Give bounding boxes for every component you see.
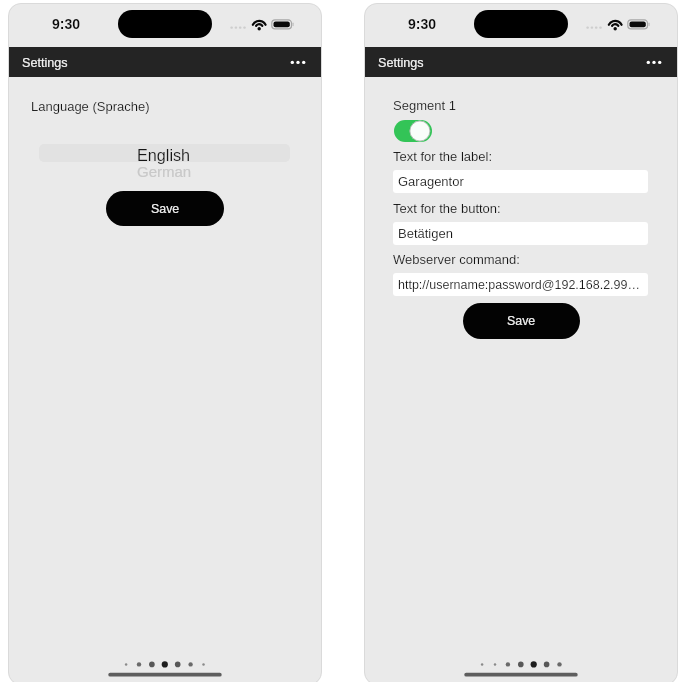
staticText: Text for the button: bbox=[393, 201, 501, 216]
staticText: Segment 1 bbox=[393, 98, 456, 113]
staticText: 9:30 bbox=[408, 16, 437, 32]
staticText: http://username:password@192.168.2.99:80… bbox=[398, 278, 643, 292]
button[interactable]: http://username:password@192.168.2.99:80… bbox=[393, 273, 648, 296]
staticText: 9:30 bbox=[52, 16, 81, 32]
staticText: Webserver command: bbox=[393, 252, 520, 267]
button[interactable] bbox=[39, 144, 290, 162]
staticText: Save bbox=[507, 314, 536, 328]
button[interactable]: Garagentor bbox=[393, 170, 648, 193]
staticText: German bbox=[137, 163, 192, 180]
staticText: Settings bbox=[22, 56, 68, 70]
staticText: English bbox=[137, 146, 191, 164]
staticText: Betätigen bbox=[398, 226, 453, 241]
button[interactable]: Betätigen bbox=[393, 222, 648, 245]
button[interactable]: Save bbox=[463, 303, 580, 339]
staticText: Garagentor bbox=[398, 174, 464, 189]
staticText: Language (Sprache) bbox=[31, 99, 150, 114]
button[interactable]: More options bbox=[639, 47, 669, 77]
button[interactable]: Save bbox=[106, 191, 224, 226]
staticText: Text for the label: bbox=[393, 149, 492, 164]
button[interactable]: Segment 1 toggle bbox=[394, 120, 432, 142]
staticText: Settings bbox=[378, 56, 424, 70]
staticText: Save bbox=[151, 202, 180, 216]
button[interactable]: More options bbox=[283, 47, 313, 77]
